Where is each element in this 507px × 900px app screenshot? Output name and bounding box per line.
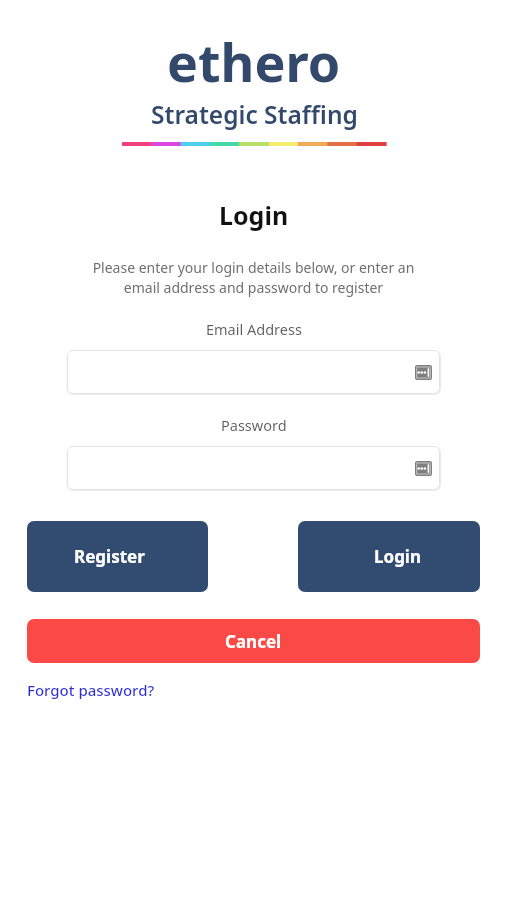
staticText: Please enter your login details below, o… xyxy=(28,258,479,298)
button[interactable]: Text input field xyxy=(67,446,440,490)
staticText: Password xyxy=(221,415,287,435)
staticText: Login xyxy=(374,545,422,568)
staticText: Login xyxy=(219,198,289,232)
button[interactable]: Login xyxy=(298,521,480,592)
button[interactable]: Cancel xyxy=(27,619,480,663)
staticText: Register xyxy=(74,545,145,568)
staticText: Email Address xyxy=(206,319,302,339)
staticText: Strategic Staffing xyxy=(151,98,358,131)
staticText: Cancel xyxy=(225,630,282,653)
button[interactable]: Register xyxy=(27,521,208,592)
staticText: ethero xyxy=(167,26,341,97)
button[interactable]: Text input field xyxy=(67,350,440,394)
button[interactable]: Forgot password? xyxy=(27,680,155,700)
